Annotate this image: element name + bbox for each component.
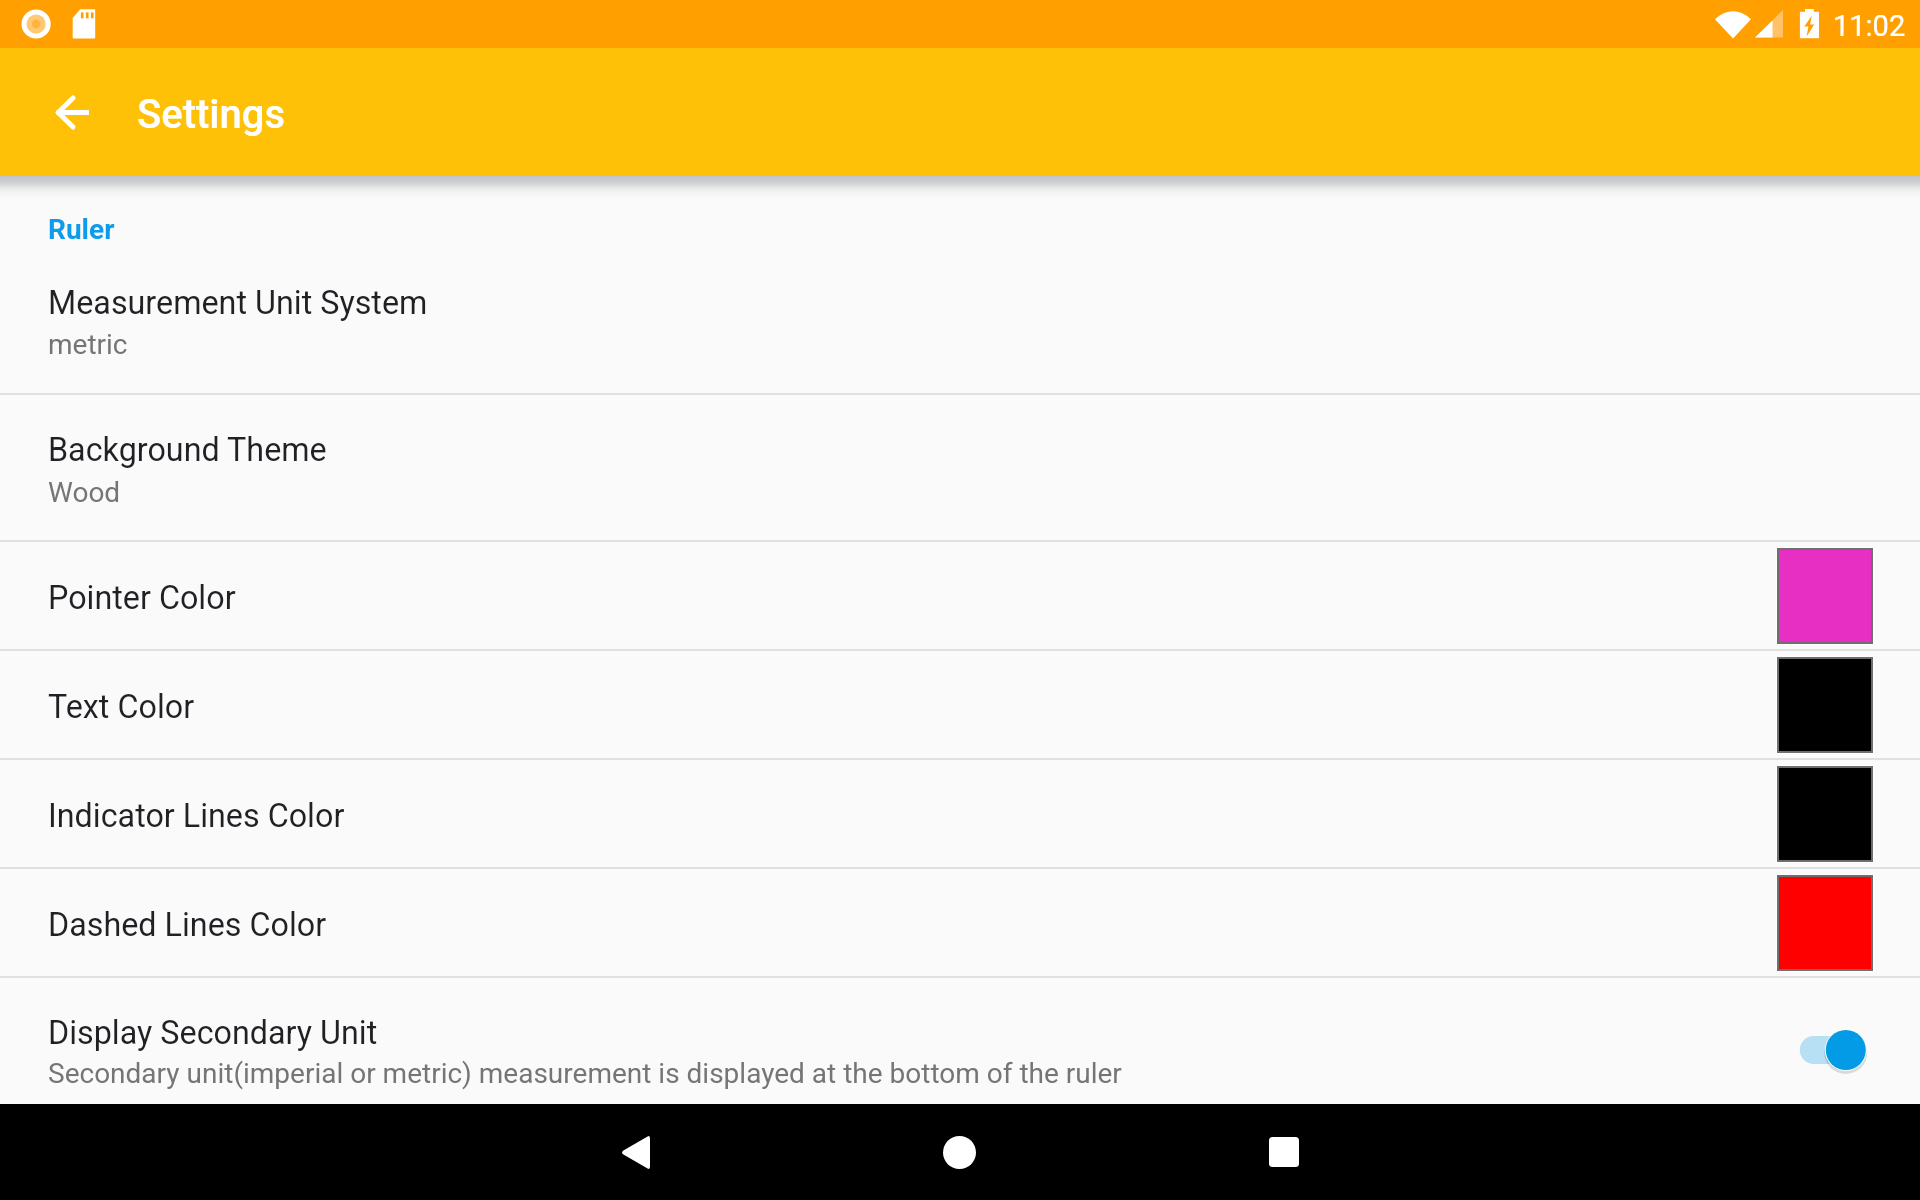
button[interactable]: Background Theme [0,395,1920,540]
button[interactable]: Navigate up [32,72,112,152]
staticText: Secondary unit(imperial or metric) measu… [48,1057,1122,1090]
button[interactable]: Back [588,1104,684,1200]
button[interactable]: Indicator Lines Color [0,760,1920,867]
staticText: Ruler [48,213,115,246]
staticText: metric [48,328,128,361]
staticText: Indicator Lines Color [48,797,345,835]
staticText: Measurement Unit System [48,284,428,322]
staticText: Settings [137,91,286,138]
button[interactable]: Home [911,1104,1007,1200]
button[interactable]: Text Color [0,651,1920,758]
button[interactable]: Measurement Unit System [0,265,1920,393]
staticText: Text Color [48,688,195,726]
button[interactable]: Display Secondary Unit [0,978,1920,1104]
staticText: Wood [48,476,121,509]
button[interactable]: Dashed Lines Color [0,869,1920,976]
staticText: Display Secondary Unit [48,1014,378,1052]
staticText: 11:02 [1833,9,1906,43]
staticText: Background Theme [48,431,327,469]
staticText: Pointer Color [48,579,236,617]
staticText: Dashed Lines Color [48,906,327,944]
button[interactable]: Recent apps [1236,1104,1332,1200]
button[interactable]: Pointer Color [0,542,1920,649]
